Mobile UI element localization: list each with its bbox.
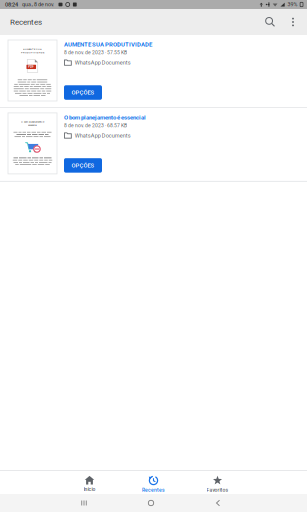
staticText: O bom planejamento é bbox=[21, 120, 44, 123]
staticText: OPÇÕES bbox=[71, 162, 94, 169]
staticText: 8 de nov. de 2023 · 57.55 KB bbox=[64, 49, 127, 55]
staticText: AUMENTE SUA PRODUTIVIDADE bbox=[64, 41, 152, 48]
staticText: 08:24 bbox=[5, 1, 18, 8]
staticText: WhatsApp Documents bbox=[75, 59, 131, 66]
staticText: OPÇÕES bbox=[71, 89, 94, 96]
button[interactable]: Search bbox=[258, 9, 282, 35]
staticText: PDF bbox=[28, 65, 34, 68]
button[interactable]: AUMENTE SUA bbox=[0, 35, 307, 107]
staticText: Recentes bbox=[10, 17, 42, 27]
button[interactable]: OPÇÕES bbox=[64, 85, 102, 100]
button[interactable]: Recent apps bbox=[50, 494, 117, 512]
staticText: 8 de nov. de 2023 · 68.57 KB bbox=[64, 122, 127, 128]
staticText: Início bbox=[83, 486, 95, 492]
button[interactable]: OPÇÕES bbox=[64, 158, 102, 173]
staticText: O bom planejamento é essencial bbox=[64, 114, 146, 121]
button[interactable]: Início bbox=[57, 471, 121, 494]
staticText: AUMENTE SUA bbox=[23, 47, 42, 50]
button[interactable]: Favoritos bbox=[185, 471, 249, 494]
staticText: Recentes bbox=[142, 487, 165, 493]
button[interactable]: Home bbox=[117, 494, 184, 512]
staticText: qua., 8 de nov. bbox=[22, 1, 54, 8]
staticText: Favoritos bbox=[206, 487, 228, 493]
button[interactable]: More options bbox=[282, 9, 304, 35]
button[interactable]: Recentes bbox=[121, 471, 185, 494]
button[interactable]: Back bbox=[184, 494, 251, 512]
staticText: essencial bbox=[28, 123, 37, 126]
staticText: PRODUTIVIDADE bbox=[21, 51, 44, 54]
staticText: WhatsApp Documents bbox=[75, 132, 131, 139]
button[interactable]: O bom planejamento é bbox=[0, 108, 307, 181]
staticText: 39% bbox=[287, 1, 297, 8]
